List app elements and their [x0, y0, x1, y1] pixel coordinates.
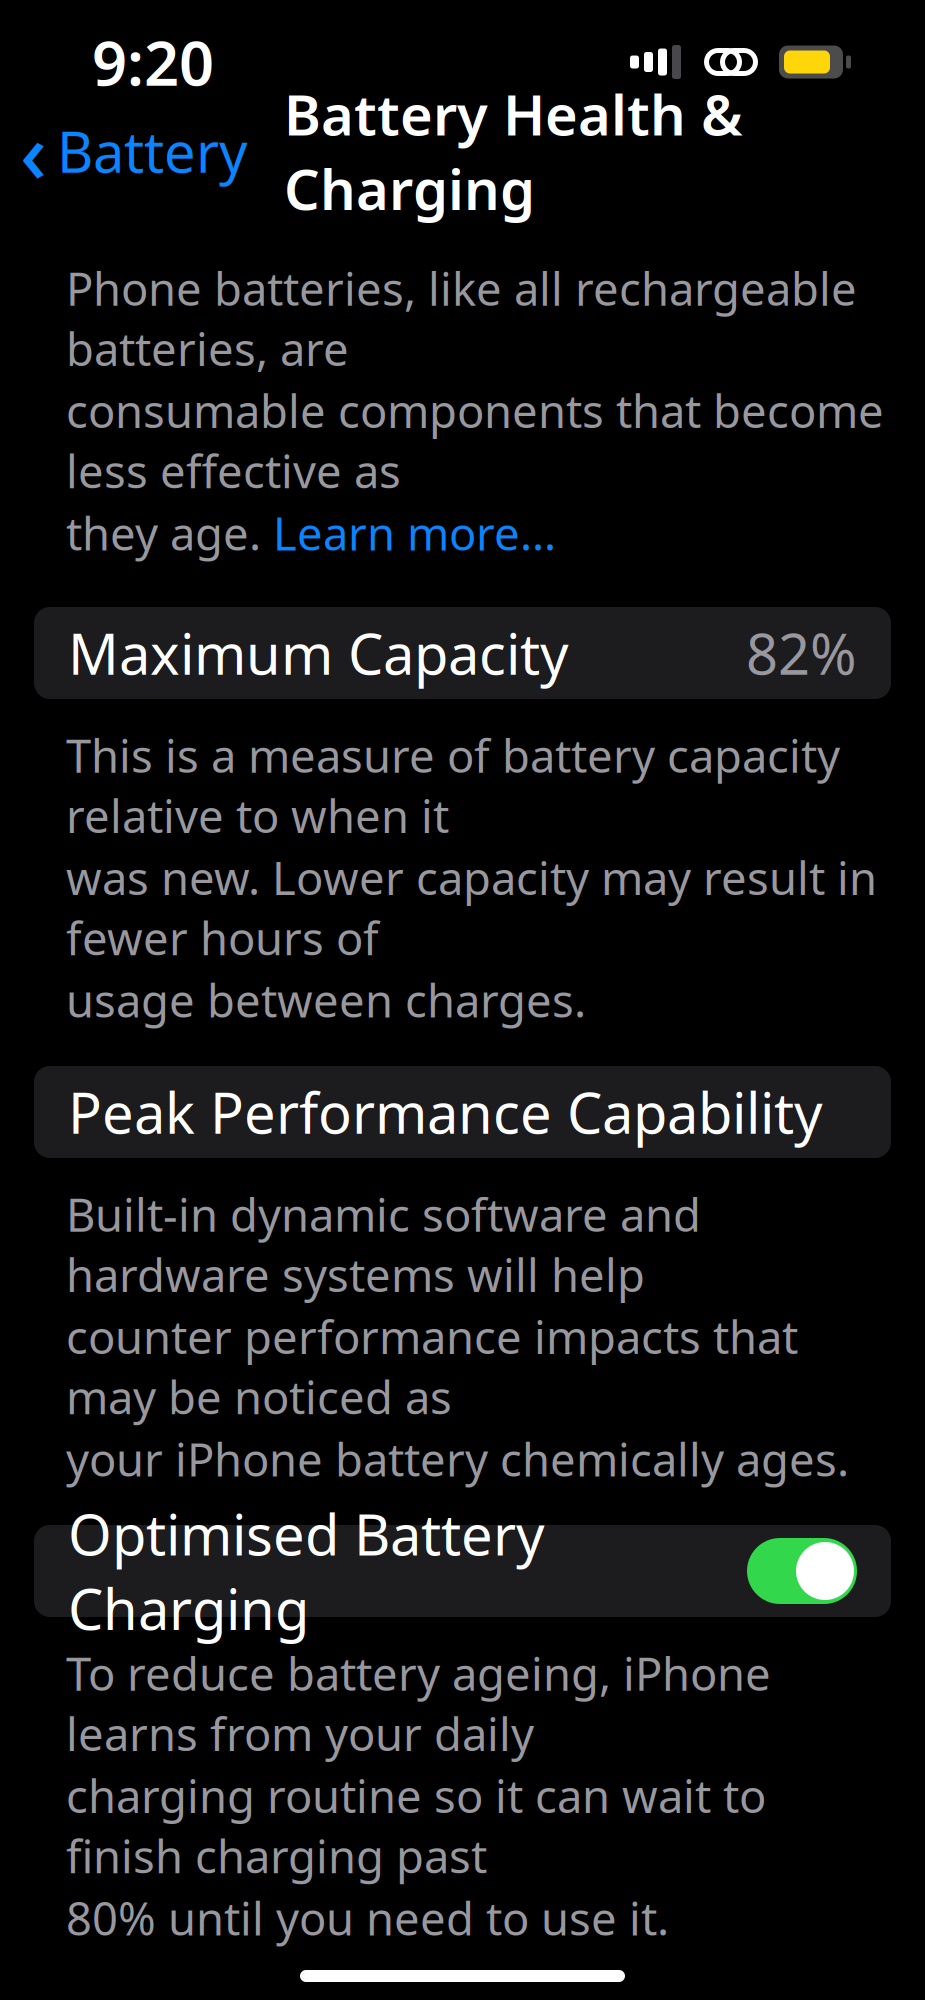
staticText: ‹ — [20, 96, 47, 206]
staticText: counter performance impacts that may be … — [66, 1306, 798, 1427]
button[interactable]: Optimised Battery Charging — [34, 1525, 891, 1617]
staticText: usage between charges. — [66, 970, 586, 1030]
button[interactable]: Learn more... — [273, 503, 556, 563]
staticText: your iPhone battery chemically ages. — [66, 1429, 849, 1489]
staticText: 80% until you need to use it. — [66, 1888, 669, 1948]
staticText: 9:20 — [92, 21, 214, 103]
staticText: consumable components that become less e… — [66, 380, 884, 501]
staticText: 82% — [746, 616, 857, 690]
staticText: they age. — [66, 503, 273, 563]
button[interactable]: ‹ — [0, 88, 248, 214]
button[interactable]: Maximum Capacity — [34, 607, 891, 699]
staticText: charging routine so it can wait to finis… — [66, 1765, 766, 1886]
staticText: Battery Health & Charging — [284, 77, 743, 225]
staticText: To reduce battery ageing, iPhone learns … — [66, 1643, 771, 1763]
staticText: was new. Lower capacity may result in fe… — [66, 847, 877, 968]
staticText: Phone batteries, like all rechargeable b… — [66, 258, 857, 378]
staticText: Battery — [57, 114, 248, 188]
staticText: This is a measure of battery capacity re… — [66, 725, 840, 845]
button[interactable]: Peak Performance Capability — [34, 1066, 891, 1158]
staticText: Maximum Capacity — [68, 616, 569, 690]
staticText: Learn more... — [273, 503, 556, 563]
staticText: Peak Performance Capability — [68, 1075, 823, 1149]
staticText: Optimised Battery Charging — [68, 1497, 545, 1645]
staticText: Built-in dynamic software and hardware s… — [66, 1184, 701, 1304]
